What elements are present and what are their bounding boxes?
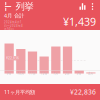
staticText: 11月 xyxy=(29,72,36,75)
staticText: 列挙 xyxy=(15,1,33,12)
staticText: 12月 xyxy=(41,72,48,75)
button[interactable]: More options xyxy=(88,1,97,12)
button[interactable]: Back xyxy=(2,1,13,12)
staticText: 9月 xyxy=(7,72,12,75)
staticText: 2024年4月1日〜2024年4月30日 xyxy=(4,20,23,31)
staticText: 11ヶ月平均額 xyxy=(4,88,35,96)
staticText: 1月 xyxy=(53,72,58,75)
button[interactable]: Chart view xyxy=(77,1,88,12)
staticText: ¥1,439 xyxy=(63,14,96,29)
staticText: 4月 合計 xyxy=(4,12,24,19)
staticText: 4月 xyxy=(88,72,93,75)
staticText: 3月 xyxy=(77,72,82,75)
staticText: ¥22,836 xyxy=(6,56,19,60)
staticText: 10月 xyxy=(17,72,24,75)
staticText: 2月 xyxy=(65,72,70,75)
staticText: ¥22,836 xyxy=(70,88,96,96)
